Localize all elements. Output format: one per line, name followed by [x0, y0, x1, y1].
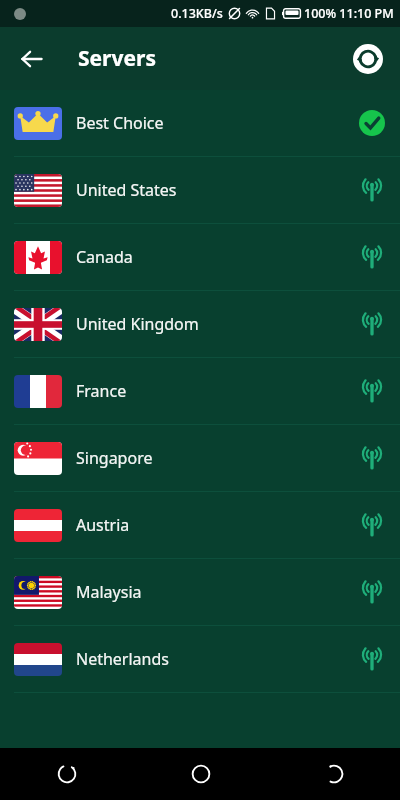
staticText: Servers — [78, 44, 156, 73]
button[interactable]: Malaysia — [0, 559, 400, 625]
staticText: United States — [76, 179, 344, 201]
button[interactable]: United States — [0, 157, 400, 223]
button[interactable]: Singapore — [0, 425, 400, 491]
button[interactable]: United Kingdom — [0, 291, 400, 357]
button[interactable]: Home — [134, 748, 267, 800]
button[interactable]: Austria — [0, 492, 400, 558]
staticText: 0.13KB/s — [171, 5, 223, 22]
button[interactable]: Back — [10, 37, 54, 81]
button[interactable]: Best Choice — [0, 90, 400, 156]
staticText: Malaysia — [76, 581, 344, 603]
button[interactable]: Recents — [0, 748, 134, 800]
button[interactable]: France — [0, 358, 400, 424]
button[interactable]: Netherlands — [0, 626, 400, 692]
button[interactable]: Canada — [0, 224, 400, 290]
staticText: Netherlands — [76, 648, 344, 670]
staticText: Canada — [76, 246, 344, 268]
staticText: Best Choice — [76, 112, 344, 134]
staticText: United Kingdom — [76, 313, 344, 335]
staticText: Austria — [76, 514, 344, 536]
staticText: 100% 11:10 PM — [304, 5, 394, 22]
button[interactable]: Back — [267, 748, 400, 800]
button[interactable]: Refresh — [346, 37, 390, 81]
staticText: France — [76, 380, 344, 402]
staticText: Singapore — [76, 447, 344, 469]
